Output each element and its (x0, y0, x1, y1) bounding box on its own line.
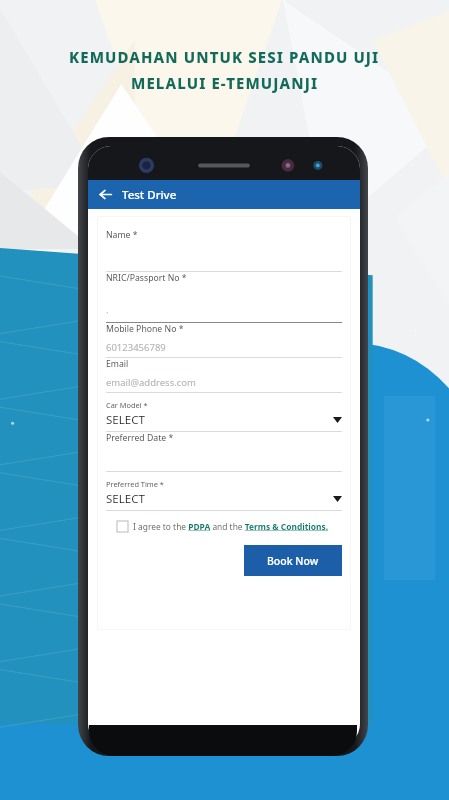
button[interactable]: Preferred Date * (106, 432, 342, 472)
button[interactable]: I agree to the PDPA and the Terms & Cond… (117, 521, 342, 532)
button[interactable]: Back (88, 180, 122, 209)
staticText: NRIC/Passport No * (106, 272, 187, 284)
staticText: I agree to the PDPA and the Terms & Cond… (133, 521, 329, 532)
staticText: SELECT (106, 412, 145, 428)
button[interactable]: Car Model * (106, 393, 342, 432)
staticText: Mobile Phone No * (106, 323, 184, 335)
staticText: SELECT (106, 491, 145, 507)
button[interactable]: Email (106, 358, 342, 393)
button[interactable]: Name * (106, 229, 342, 272)
staticText: Book Now (267, 554, 319, 568)
staticText: KEMUDAHAN UNTUK SESI PANDU UJI (69, 47, 380, 67)
button[interactable]: Mobile Phone No * (106, 323, 342, 358)
staticText: Preferred Date * (106, 432, 174, 444)
staticText: · (106, 306, 109, 319)
staticText: Preferred Time * (106, 479, 164, 489)
button[interactable]: NRIC/Passport No * (106, 272, 342, 323)
staticText: 60123456789 (106, 341, 166, 354)
button[interactable]: Book Now (244, 545, 342, 576)
staticText: Email (106, 358, 129, 370)
staticText: Car Model * (106, 400, 148, 410)
staticText: MELALUI E-TEMUJANJI (131, 73, 319, 93)
button[interactable]: Preferred Time * (106, 472, 342, 511)
staticText: email@address.com (106, 376, 196, 389)
staticText: Name * (106, 229, 138, 241)
staticText: Test Drive (122, 187, 177, 203)
